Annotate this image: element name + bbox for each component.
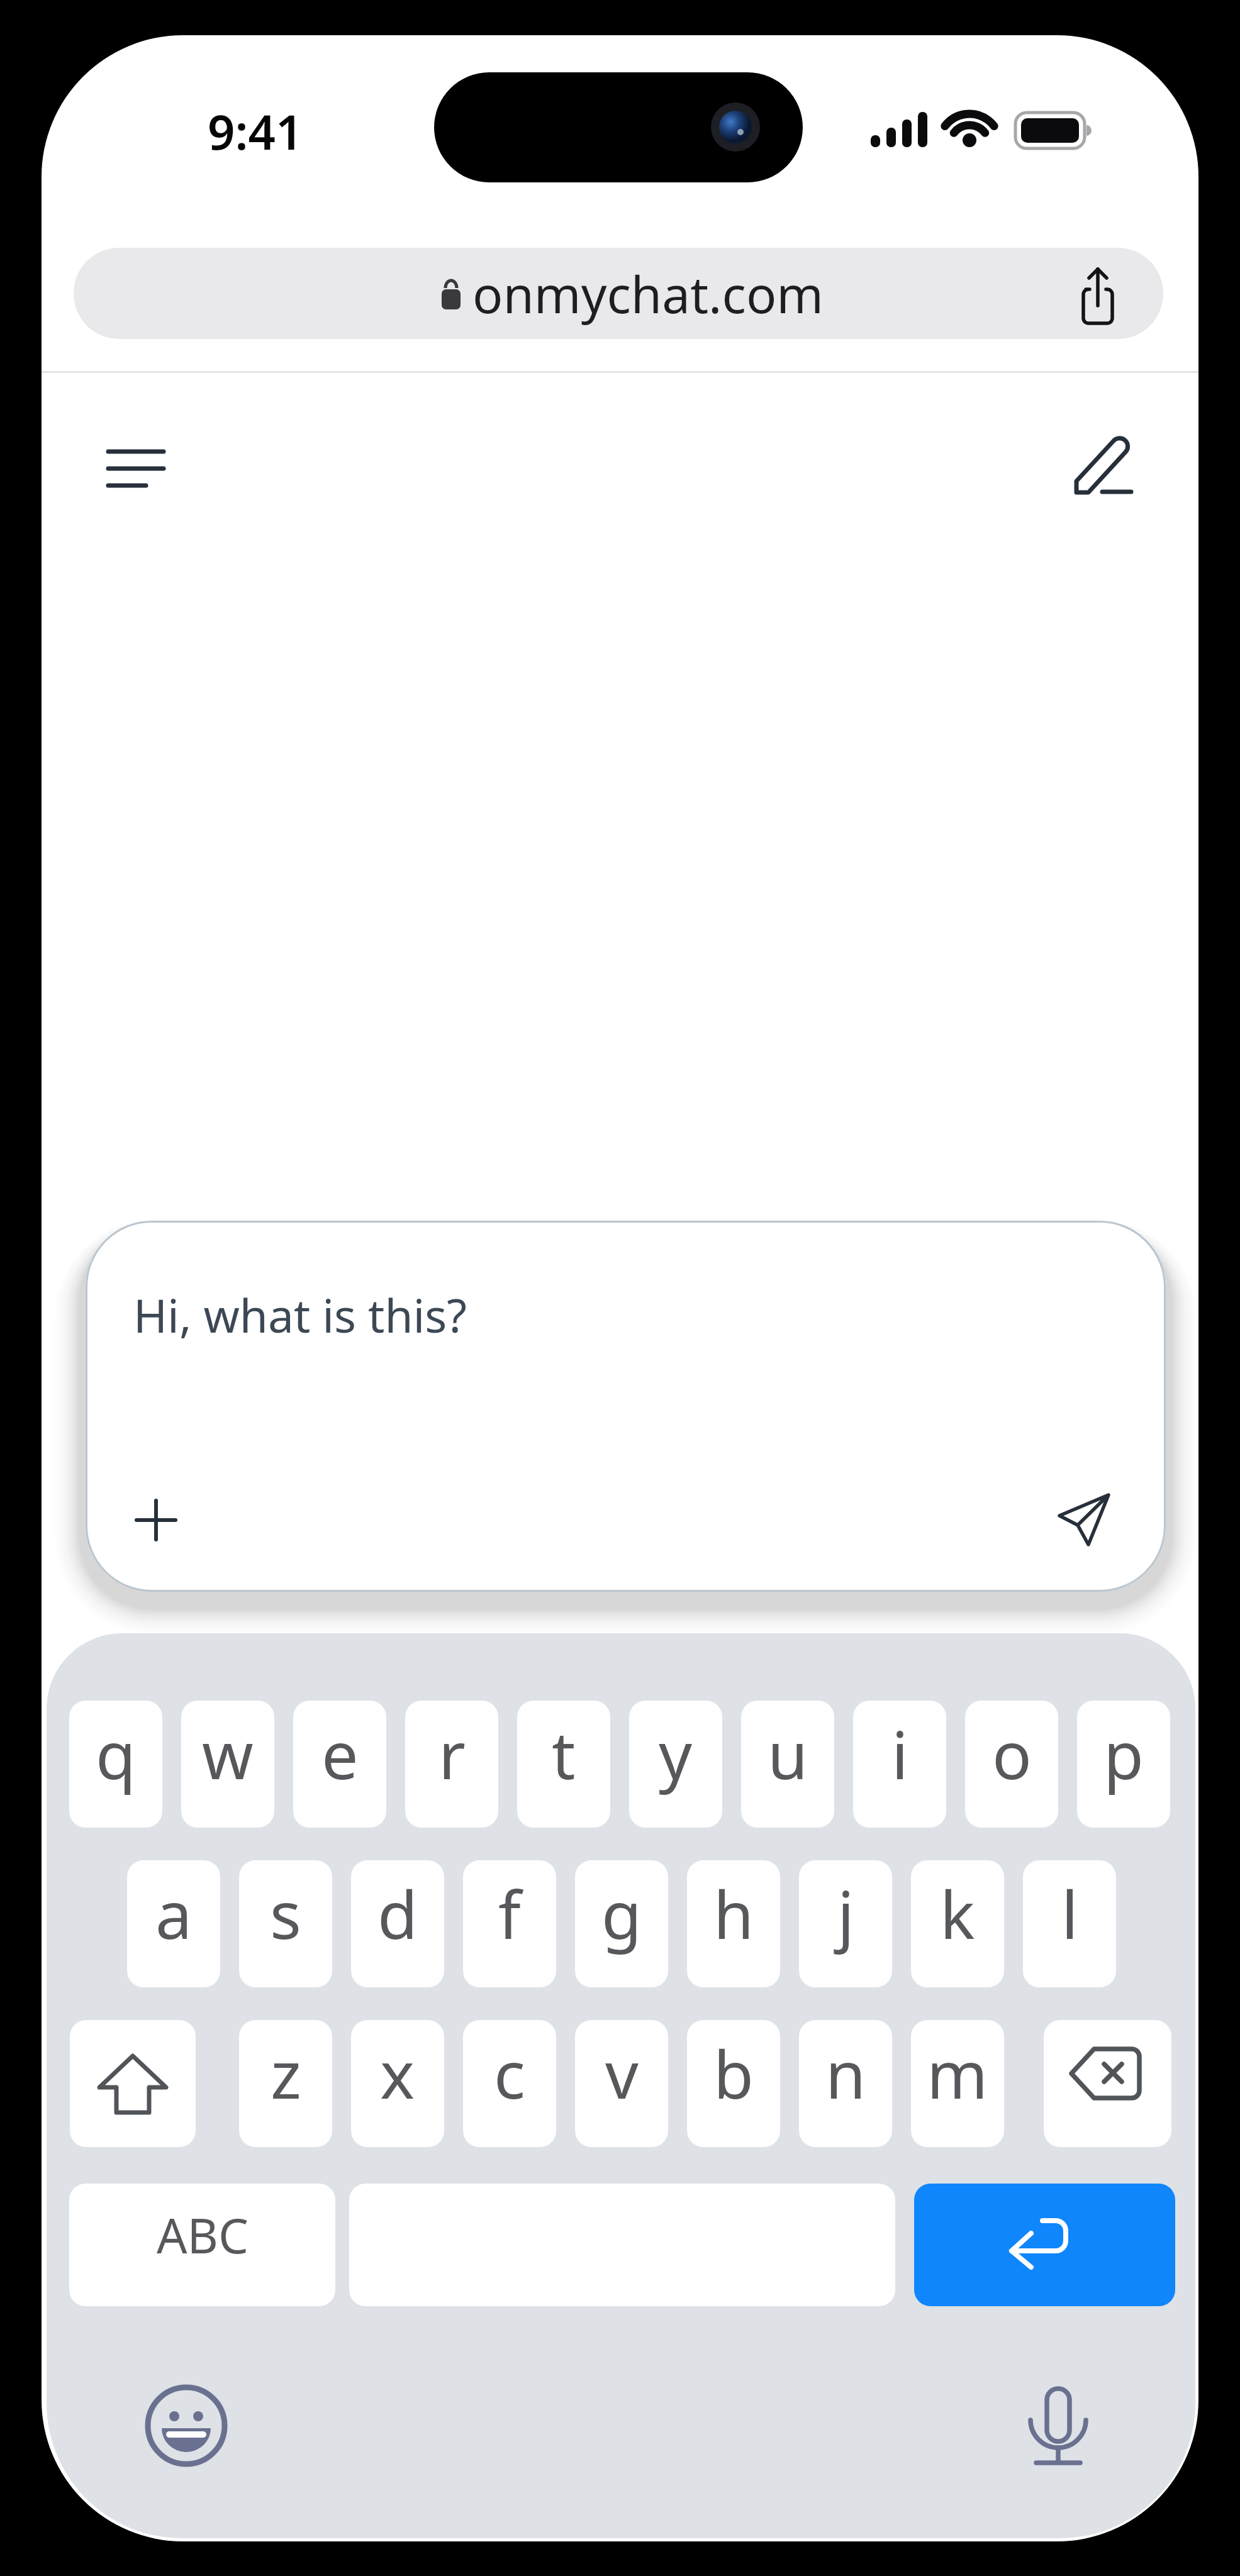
button[interactable]: k [911,1860,1004,1987]
button[interactable]: i [853,1701,946,1828]
button[interactable]: b [687,2020,780,2147]
button[interactable] [1010,2372,1105,2472]
staticText: g [601,1869,642,1958]
button[interactable] [1061,425,1142,507]
button[interactable]: a [127,1860,220,1987]
button[interactable]: j [799,1860,892,1987]
button[interactable]: x [351,2020,444,2147]
button[interactable]: Hi, what is this? [86,1221,1166,1592]
staticText: h [713,1869,754,1958]
button[interactable]: o [965,1701,1058,1828]
button[interactable] [96,438,177,501]
staticText: Hi, what is this? [133,1284,467,1346]
staticText: 9:41 [208,99,303,164]
staticText: c [494,2029,525,2118]
button[interactable] [74,248,1163,339]
button[interactable] [70,2020,196,2147]
button[interactable]: v [575,2020,668,2147]
button[interactable]: m [911,2020,1004,2147]
staticText: n [825,2029,866,2118]
button[interactable]: ABC [69,2184,335,2306]
button[interactable]: t [517,1701,610,1828]
staticText: onmychat.com [472,259,824,328]
staticText: q [96,1709,136,1799]
button[interactable]: u [741,1701,834,1828]
button[interactable]: l [1023,1860,1116,1987]
staticText: f [498,1869,521,1958]
button[interactable]: n [799,2020,892,2147]
button[interactable]: r [405,1701,498,1828]
staticText: j [837,1869,854,1958]
staticText: s [270,1869,301,1958]
staticText: e [321,1709,359,1799]
staticText: v [605,2029,639,2118]
staticText: d [377,1869,418,1958]
button[interactable]: z [239,2020,332,2147]
staticText: t [552,1709,576,1799]
staticText: a [155,1869,193,1958]
button[interactable]: d [351,1860,444,1987]
button[interactable]: w [181,1701,274,1828]
button[interactable]: q [69,1701,162,1828]
staticText: m [927,2029,988,2118]
button[interactable] [1048,1485,1117,1554]
button[interactable]: y [629,1701,722,1828]
staticText: p [1103,1709,1144,1799]
staticText: k [940,1869,975,1958]
staticText: x [380,2029,415,2118]
button[interactable] [914,2184,1175,2306]
button[interactable]: h [687,1860,780,1987]
staticText: w [202,1709,254,1799]
button[interactable]: e [293,1701,386,1828]
staticText: i [891,1709,908,1799]
staticText: ABC [157,2202,249,2268]
button[interactable] [142,2382,230,2470]
staticText: y [659,1709,693,1799]
button[interactable]: f [463,1860,556,1987]
button[interactable]: c [463,2020,556,2147]
button[interactable]: p [1077,1701,1170,1828]
staticText: l [1061,1869,1078,1958]
staticText: u [768,1709,808,1799]
button[interactable]: s [239,1860,332,1987]
button[interactable] [1044,2020,1171,2147]
staticText: o [992,1709,1032,1799]
button[interactable] [131,1495,181,1545]
button[interactable] [1067,258,1130,334]
staticText: b [713,2029,754,2118]
staticText: r [438,1709,466,1799]
button[interactable]: g [575,1860,668,1987]
staticText: z [271,2029,301,2118]
